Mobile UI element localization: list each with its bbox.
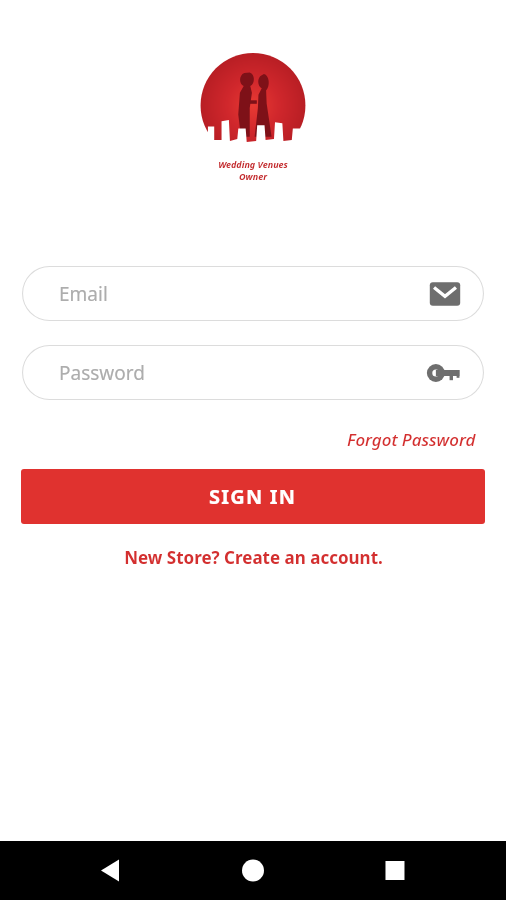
staticText: Wedding Venues — [218, 158, 288, 170]
staticText: SIGN IN — [209, 483, 297, 510]
staticText: New Store? Create an account. — [124, 546, 383, 569]
staticText: Owner — [239, 170, 267, 182]
staticText: Forgot Password — [347, 428, 476, 451]
button[interactable]: Forgot Password — [345, 426, 478, 453]
button[interactable]: New Store? Create an account. — [120, 542, 387, 573]
staticText: Password — [59, 360, 145, 386]
button[interactable]: SIGN IN — [21, 469, 485, 524]
other: Email — [426, 279, 464, 309]
other: Password — [426, 358, 464, 388]
button[interactable]: Email — [22, 266, 484, 321]
staticText: Email — [59, 281, 108, 307]
button[interactable]: Password — [22, 345, 484, 400]
